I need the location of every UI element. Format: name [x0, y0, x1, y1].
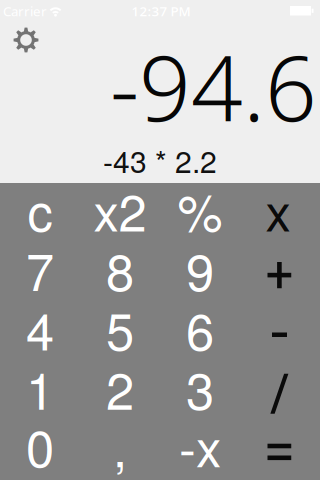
button[interactable]: Settings: [12, 26, 40, 54]
staticText: 9: [186, 233, 214, 305]
button[interactable]: Negate: [160, 421, 240, 480]
staticText: -43 * 2.2: [103, 138, 217, 181]
staticText: 6: [186, 292, 214, 365]
button[interactable]: Square: [80, 183, 160, 242]
button[interactable]: 4: [0, 302, 80, 361]
staticText: ,: [113, 409, 127, 480]
staticText: 0: [26, 409, 54, 480]
staticText: -94.6: [110, 26, 317, 146]
staticText: 4: [26, 292, 54, 365]
button[interactable]: Equals: [240, 421, 320, 480]
button[interactable]: Percent: [160, 183, 240, 242]
button[interactable]: Add: [240, 242, 320, 302]
button[interactable]: 5: [80, 302, 160, 361]
button[interactable]: 3: [160, 361, 240, 421]
staticText: x: [265, 173, 290, 246]
button[interactable]: 9: [160, 242, 240, 302]
staticText: 1: [26, 352, 54, 424]
staticText: x2: [93, 173, 146, 246]
button[interactable]: Divide: [240, 361, 320, 421]
button[interactable]: 7: [0, 242, 80, 302]
button[interactable]: 8: [80, 242, 160, 302]
button[interactable]: 2: [80, 361, 160, 421]
staticText: 12:37 PM: [131, 2, 190, 20]
staticText: 8: [106, 233, 134, 305]
button[interactable]: 1: [0, 361, 80, 421]
staticText: 7: [26, 233, 54, 305]
button[interactable]: Clear: [0, 183, 80, 242]
button[interactable]: Multiply: [240, 183, 320, 242]
staticText: Carrier: [3, 2, 47, 20]
button[interactable]: Subtract: [240, 302, 320, 361]
staticText: %: [177, 173, 222, 246]
staticText: c: [27, 173, 52, 246]
staticText: 2: [106, 352, 134, 424]
staticText: 5: [106, 292, 134, 365]
staticText: -x: [179, 409, 221, 480]
button[interactable]: Decimal separator: [80, 421, 160, 480]
button[interactable]: 6: [160, 302, 240, 361]
staticText: 3: [186, 352, 214, 424]
button[interactable]: 0: [0, 421, 80, 480]
